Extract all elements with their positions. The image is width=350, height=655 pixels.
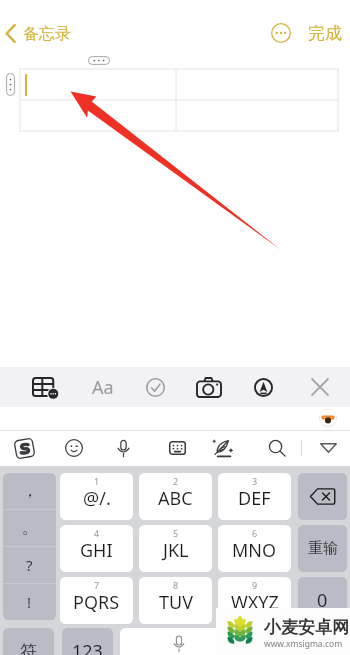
staticText: 1 — [94, 475, 100, 487]
staticText: 6 — [252, 527, 258, 539]
button[interactable]: ? — [3, 547, 56, 583]
staticText: ABC — [158, 486, 193, 511]
button[interactable]: Column handle — [88, 56, 110, 65]
button[interactable]: Backspace — [298, 473, 347, 520]
button[interactable]: Close — [294, 367, 346, 407]
staticText: 8 — [173, 579, 179, 591]
button[interactable]: Hide keyboard — [306, 430, 350, 466]
staticText: 完成 — [308, 23, 342, 44]
staticText: 。 — [22, 518, 38, 538]
button[interactable]: Text format — [77, 367, 129, 407]
staticText: 0 — [317, 588, 328, 613]
button[interactable]: 2 — [139, 473, 212, 520]
button[interactable]: Insert table — [18, 367, 70, 407]
button[interactable]: 9 — [218, 577, 291, 624]
button[interactable]: Checklist — [129, 367, 181, 407]
button[interactable]: Voice input — [101, 430, 145, 466]
button[interactable]: 备忘录 — [3, 19, 73, 47]
staticText: @/. — [83, 486, 111, 511]
staticText: MNO — [232, 538, 277, 563]
staticText: ! — [27, 592, 32, 612]
button[interactable]: 。 — [3, 510, 56, 546]
staticText: 小麦安卓网 — [264, 617, 349, 638]
button[interactable]: 5 — [139, 525, 212, 572]
button[interactable]: More options — [270, 22, 292, 44]
button[interactable]: 3 — [218, 473, 291, 520]
button[interactable]: Row handle — [6, 73, 15, 96]
staticText: 重输 — [308, 539, 338, 558]
button[interactable]: 0 — [298, 577, 347, 624]
button[interactable]: 4 — [60, 525, 133, 572]
staticText: 4 — [94, 527, 100, 539]
staticText: 7 — [94, 579, 100, 591]
staticText: ? — [26, 555, 33, 575]
button[interactable]: ! — [3, 584, 56, 620]
button[interactable]: Camera — [183, 367, 235, 407]
button[interactable]: Search — [255, 430, 299, 466]
button[interactable]: 1 — [60, 473, 133, 520]
button[interactable]: Emoji — [52, 430, 96, 466]
staticText: TUV — [159, 590, 193, 615]
staticText: 2 — [173, 475, 179, 487]
staticText: 9 — [252, 579, 258, 591]
staticText: Aa — [92, 375, 114, 400]
staticText: 符 — [20, 641, 37, 655]
button[interactable]: 重输 — [298, 525, 347, 572]
button[interactable]: Keyboard layout — [155, 430, 199, 466]
staticText: DEF — [238, 486, 271, 511]
button[interactable]: Handwriting — [201, 430, 245, 466]
button[interactable]: 符 — [3, 628, 54, 655]
button[interactable]: Markup — [237, 367, 289, 407]
button[interactable]: Voice input — [120, 628, 228, 655]
button[interactable]: 完成 — [305, 19, 345, 48]
button[interactable]: ， — [3, 473, 56, 509]
staticText: PQRS — [73, 590, 120, 615]
staticText: 123 — [72, 639, 103, 655]
staticText: JKL — [163, 538, 189, 563]
staticText: 3 — [252, 475, 258, 487]
staticText: ， — [22, 481, 38, 501]
button[interactable]: 8 — [139, 577, 212, 624]
button[interactable]: Input method — [2, 430, 46, 466]
staticText: WXYZ — [231, 590, 279, 615]
button[interactable]: 6 — [218, 525, 291, 572]
staticText: 5 — [173, 527, 179, 539]
button[interactable]: 7 — [60, 577, 133, 624]
staticText: 备忘录 — [23, 24, 71, 44]
button[interactable]: 123 — [62, 628, 113, 655]
staticText: www.xmsigma.com — [264, 638, 343, 650]
staticText: GHI — [80, 538, 113, 563]
